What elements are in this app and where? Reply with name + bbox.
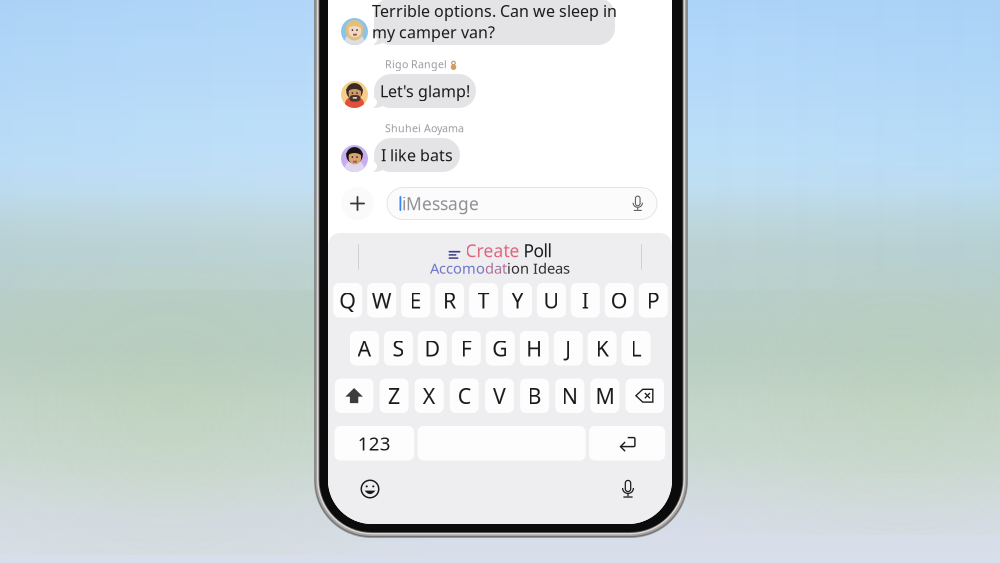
- button[interactable]: P: [639, 283, 668, 317]
- button[interactable]: O: [605, 283, 634, 317]
- button[interactable]: Create: [380, 241, 620, 276]
- button[interactable]: Q: [333, 283, 362, 317]
- staticText: N: [562, 382, 578, 410]
- button[interactable]: U: [537, 283, 566, 317]
- staticText: ion Ideas: [507, 258, 570, 278]
- button[interactable]: A: [350, 331, 379, 365]
- staticText: H: [526, 334, 542, 362]
- staticText: G: [492, 334, 508, 362]
- button[interactable]: Dictation: [612, 473, 644, 505]
- staticText: D: [424, 334, 440, 362]
- button[interactable]: E: [401, 283, 430, 317]
- staticText: W: [372, 286, 392, 314]
- staticText: M: [595, 382, 614, 410]
- button[interactable]: Message field: [387, 187, 657, 219]
- staticText: Poll: [523, 239, 551, 262]
- staticText: Q: [339, 286, 356, 314]
- staticText: iMessage: [402, 192, 479, 215]
- button[interactable]: Shift: [335, 378, 373, 413]
- staticText: Create: [465, 239, 519, 262]
- button[interactable]: M: [590, 378, 619, 413]
- button[interactable]: Z: [379, 378, 408, 413]
- staticText: U: [543, 286, 559, 314]
- staticText: S: [392, 334, 404, 362]
- staticText: F: [461, 334, 472, 362]
- staticText: 123: [358, 431, 391, 456]
- button[interactable]: Delete: [625, 378, 664, 413]
- button[interactable]: J: [554, 331, 583, 365]
- button[interactable]: B: [520, 378, 549, 413]
- button[interactable]: S: [384, 331, 413, 365]
- staticText: Let's glamp!: [380, 80, 470, 102]
- staticText: E: [410, 286, 422, 314]
- button[interactable]: Return: [589, 426, 665, 460]
- button[interactable]: Y: [503, 283, 532, 317]
- staticText: A: [357, 334, 371, 362]
- staticText: Z: [388, 382, 400, 410]
- staticText: X: [423, 382, 436, 410]
- staticText: I like bats: [381, 144, 453, 166]
- button[interactable]: Emoji: [354, 473, 386, 505]
- button[interactable]: G: [486, 331, 515, 365]
- button[interactable]: L: [622, 331, 651, 365]
- staticText: O: [611, 286, 628, 314]
- staticText: Terrible options. Can we sleep in my cam…: [372, 0, 617, 43]
- staticText: Accomo: [430, 258, 485, 278]
- button[interactable]: C: [450, 378, 479, 413]
- button[interactable]: K: [588, 331, 617, 365]
- button[interactable]: T: [469, 283, 498, 317]
- staticText: P: [647, 286, 660, 314]
- staticText: Shuhei Aoyama: [385, 121, 464, 135]
- staticText: B: [528, 382, 542, 410]
- staticText: R: [443, 286, 456, 314]
- button[interactable]: V: [485, 378, 514, 413]
- button[interactable]: H: [520, 331, 549, 365]
- staticText: V: [493, 382, 506, 410]
- staticText: J: [565, 334, 571, 362]
- button[interactable]: W: [367, 283, 396, 317]
- staticText: Y: [511, 286, 523, 314]
- staticText: dat: [485, 258, 507, 278]
- button[interactable]: I: [571, 283, 600, 317]
- button[interactable]: N: [555, 378, 584, 413]
- staticText: L: [631, 334, 642, 362]
- staticText: K: [596, 334, 609, 362]
- staticText: I: [582, 286, 589, 314]
- button[interactable]: Attach: [341, 187, 374, 220]
- button[interactable]: X: [415, 378, 444, 413]
- button[interactable]: R: [435, 283, 464, 317]
- staticText: Rigo Rangel: [385, 57, 447, 71]
- button[interactable]: D: [418, 331, 447, 365]
- button[interactable]: 123: [335, 426, 414, 460]
- staticText: C: [458, 382, 471, 410]
- button[interactable]: F: [452, 331, 481, 365]
- staticText: T: [477, 286, 489, 314]
